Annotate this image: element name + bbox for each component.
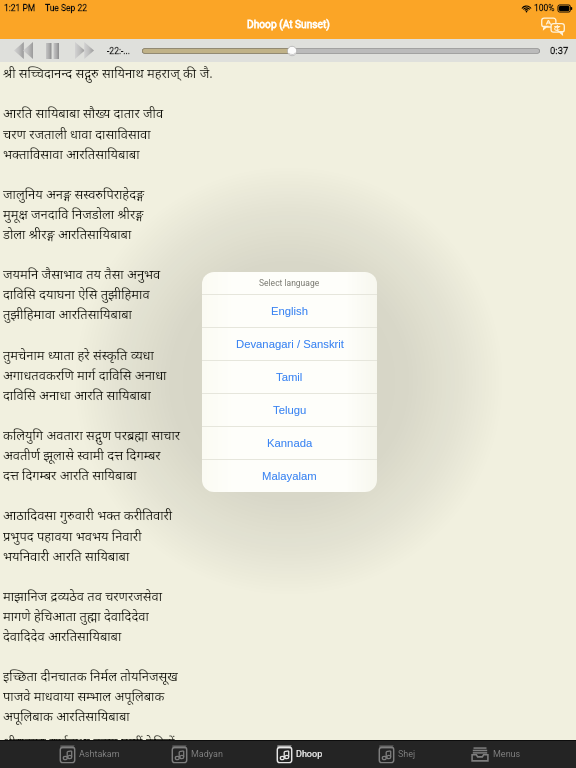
staticText: दत्त दिगम्बर आरति सायिबाबा xyxy=(3,468,137,485)
button[interactable]: Shej xyxy=(379,740,416,768)
button[interactable]: Kannada xyxy=(202,427,377,459)
staticText: Menus xyxy=(493,749,521,760)
staticText: प्रभुपद पहावया भवभय निवारी xyxy=(3,529,142,546)
staticText: आठादिवसा गुरुवारी भक्त करीतिवारी xyxy=(3,508,173,525)
staticText: 0:37 xyxy=(550,45,569,56)
staticText: माझानिज द्रव्यठेव तव चरणरजसेवा xyxy=(3,589,162,606)
staticText: Ashtakam xyxy=(79,749,120,760)
button[interactable]: Dhoop xyxy=(277,740,323,768)
staticText: Dhoop (At Sunset) xyxy=(247,19,330,31)
staticText: 1:21 PM xyxy=(4,3,36,13)
staticText: डोला श्रीरङ्ग आरतिसायिबाबा xyxy=(3,227,132,244)
staticText: मागणे हेचिआता तुह्मा देवादिदेवा xyxy=(3,609,149,626)
staticText: भयनिवारी आरति सायिबाबा xyxy=(3,549,130,566)
button[interactable]: Menus xyxy=(471,740,521,768)
button[interactable]: Previous xyxy=(10,39,37,62)
staticText: Tamil xyxy=(276,371,303,384)
staticText: Malayalam xyxy=(262,470,317,483)
staticText: जालुनिय अनङ्ग सस्वरुपिराहेदङ्ग xyxy=(3,187,145,204)
staticText: Kannada xyxy=(267,437,313,450)
staticText: अवतीर्ण झूलासे स्वामी दत्त दिगम्बर xyxy=(3,448,161,465)
staticText: आरति सायिबाबा सौख्य दातार जीव xyxy=(3,106,164,123)
staticText: भक्ताविसावा आरतिसायिबाबा xyxy=(3,147,140,164)
button[interactable]: Translate language xyxy=(541,17,565,37)
staticText: पाजवे माधवाया सम्भाल अपूलिबाक xyxy=(3,689,165,706)
staticText: 100% xyxy=(534,3,555,13)
button[interactable]: Ashtakam xyxy=(60,740,120,768)
button[interactable]: Pause xyxy=(41,39,64,62)
staticText: देवादिदेव आरतिसायिबाबा xyxy=(3,629,122,646)
button[interactable]: Devanagari / Sanskrit xyxy=(202,328,377,360)
staticText: Select language xyxy=(259,278,320,288)
staticText: दाविसि अनाधा आरति सायिबाबा xyxy=(3,388,151,405)
staticText: Dhoop xyxy=(296,749,323,760)
staticText: श्री सच्चिदानन्द सद्गुरु सायिनाथ महराज् … xyxy=(3,66,213,83)
staticText: इच्छिता दीनचातक निर्मल तोयनिजसूख xyxy=(3,669,178,686)
staticText: Madyan xyxy=(191,749,223,760)
staticText: चरण रजताली धावा दासाविसावा xyxy=(3,127,151,144)
staticText: अगाधतवकरणि मार्ग दाविसि अनाधा xyxy=(3,368,167,385)
staticText: Devanagari / Sanskrit xyxy=(236,338,344,351)
button[interactable]: Madyan xyxy=(172,740,223,768)
staticText: कलियुगि अवतारा सद्गुण परब्रह्मा साचार xyxy=(3,428,181,445)
staticText: दाविसि दयाघना ऐसि तुझीहिमाव xyxy=(3,287,150,304)
staticText: Telugu xyxy=(273,404,307,417)
staticText: श्रीसद्‌गुरु साईनाथा तुझ्या पायीं ठेवितो… xyxy=(3,735,175,752)
staticText: English xyxy=(271,305,309,318)
button[interactable]: Next xyxy=(71,39,98,62)
staticText: मुमूक्ष जनदावि निजडोला श्रीरङ्ग xyxy=(3,207,144,224)
button[interactable]: English xyxy=(202,295,377,327)
button[interactable]: Malayalam xyxy=(202,460,377,492)
staticText: जयमनि जैसाभाव तय तैसा अनुभव xyxy=(3,267,161,284)
staticText: तुमचेनाम ध्याता हरे संस्कृति व्यधा xyxy=(3,348,154,365)
staticText: तुझीहिमावा आरतिसायिबाबा xyxy=(3,307,132,324)
staticText: -22:-... xyxy=(107,46,131,56)
staticText: अपूलिबाक आरतिसायिबाबा xyxy=(3,709,130,726)
button[interactable]: Telugu xyxy=(202,394,377,426)
staticText: Shej xyxy=(398,749,416,760)
staticText: Tue Sep 22 xyxy=(45,3,87,13)
button[interactable]: Tamil xyxy=(202,361,377,393)
